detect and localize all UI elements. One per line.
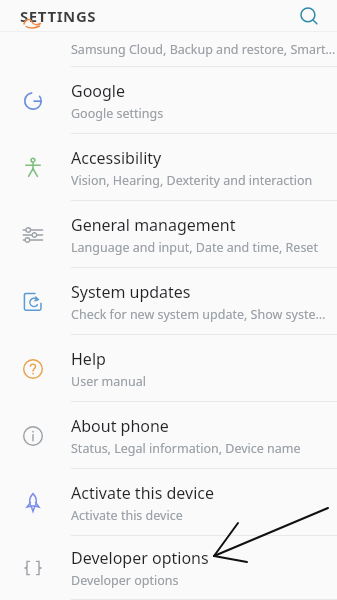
staticText: Status, Legal information, Device name bbox=[71, 440, 301, 457]
button[interactable]: About phone bbox=[0, 402, 337, 469]
staticText: Check for new system update, Show syste… bbox=[71, 306, 326, 323]
staticText: Vision, Hearing, Dexterity and interacti… bbox=[71, 172, 313, 189]
staticText: Activate this device bbox=[71, 507, 183, 524]
button[interactable]: General management bbox=[0, 201, 337, 268]
button[interactable]: Google bbox=[0, 67, 337, 134]
button[interactable]: System updates bbox=[0, 268, 337, 335]
staticText: Developer options bbox=[71, 572, 179, 589]
staticText: Activate this device bbox=[71, 482, 214, 504]
staticText: Help bbox=[71, 348, 106, 370]
staticText: SETTINGS bbox=[20, 6, 97, 26]
button[interactable]: Developer options bbox=[0, 536, 337, 600]
staticText: About phone bbox=[71, 415, 169, 437]
button[interactable]: Search bbox=[291, 0, 327, 32]
staticText: Accessibility bbox=[71, 147, 162, 169]
staticText: Samsung Cloud, Backup and restore, Smart… bbox=[71, 41, 336, 58]
staticText: Google bbox=[71, 80, 126, 102]
button[interactable]: Accessibility bbox=[0, 134, 337, 201]
staticText: Developer options bbox=[71, 547, 209, 569]
staticText: System updates bbox=[71, 281, 191, 303]
button[interactable]: Help bbox=[0, 335, 337, 402]
staticText: User manual bbox=[71, 373, 146, 390]
button[interactable]: Activate this device bbox=[0, 469, 337, 536]
staticText: Google settings bbox=[71, 105, 164, 122]
staticText: Language and input, Date and time, Reset bbox=[71, 239, 318, 256]
staticText: General management bbox=[71, 214, 236, 236]
button[interactable]: Samsung Cloud, Backup and restore, Smart… bbox=[0, 32, 337, 67]
